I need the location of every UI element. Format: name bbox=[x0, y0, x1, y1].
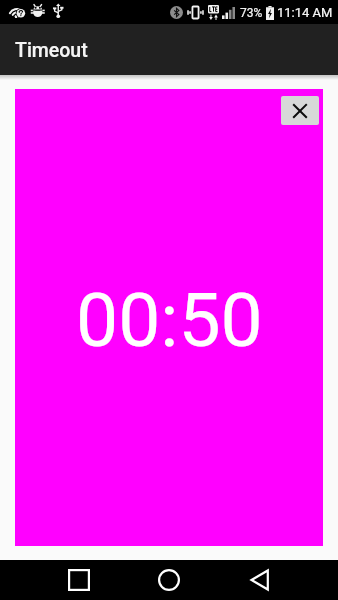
staticText: 00:50 bbox=[76, 276, 263, 364]
button[interactable]: Recents bbox=[45, 560, 113, 600]
staticText: 11:14 AM bbox=[277, 5, 333, 20]
button[interactable]: Home bbox=[135, 560, 203, 600]
button[interactable]: Close bbox=[281, 96, 319, 125]
button[interactable]: Back bbox=[225, 560, 293, 600]
staticText: Timeout bbox=[15, 39, 88, 62]
staticText: 73% bbox=[240, 6, 263, 20]
